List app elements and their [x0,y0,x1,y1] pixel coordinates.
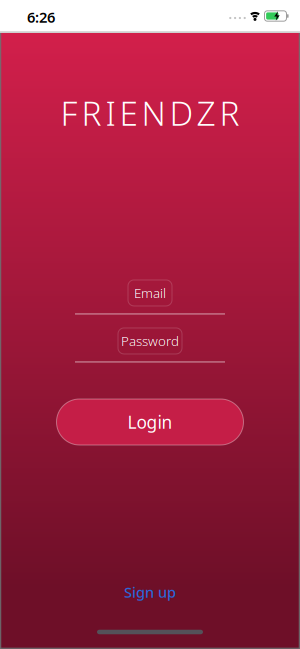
button[interactable]: Email [75,280,225,314]
staticText: Email [134,284,166,302]
staticText: Login [127,410,172,433]
staticText: Sign up [124,582,176,602]
staticText: 6:26 [27,7,55,27]
button[interactable]: Sign up [118,578,182,606]
staticText: Password [121,332,179,350]
button[interactable]: Password [75,328,225,362]
button[interactable]: Login [56,399,243,445]
staticText: FRIENDZR [60,91,239,135]
